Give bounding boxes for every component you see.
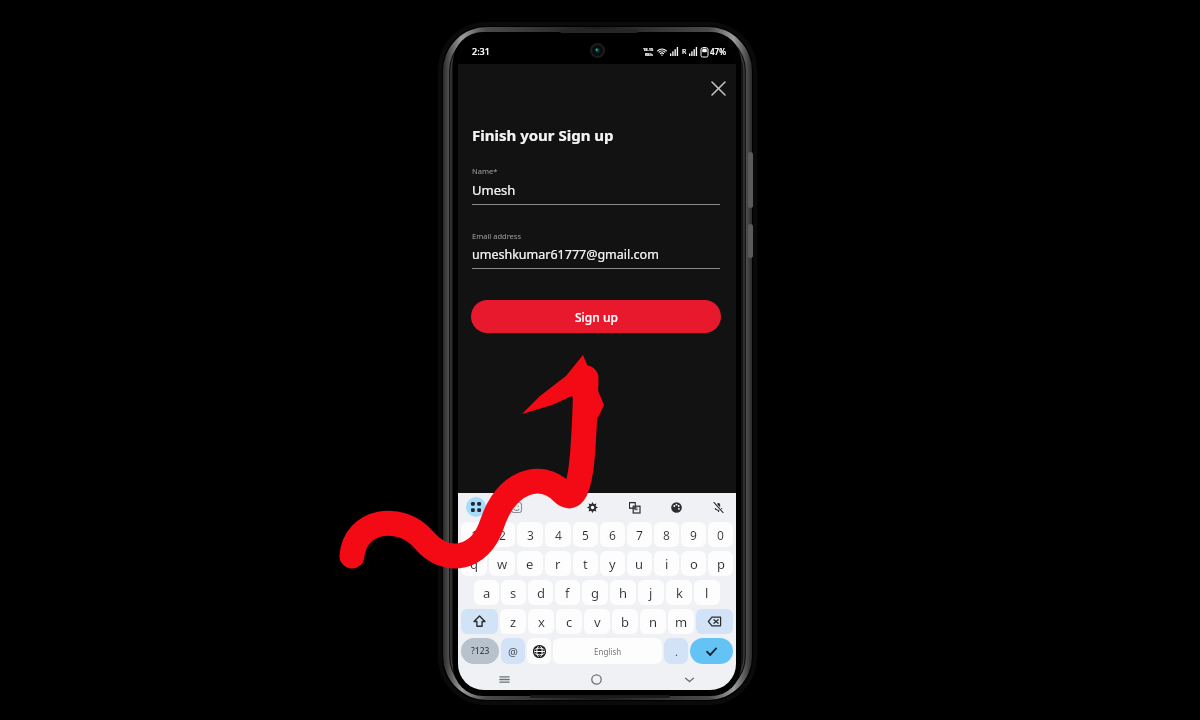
button[interactable]: 7 <box>627 522 652 547</box>
staticText: KB/s <box>645 52 653 57</box>
button[interactable]: z <box>500 609 526 634</box>
staticText: a <box>483 584 491 602</box>
button[interactable]: @ <box>501 638 525 664</box>
staticText: b <box>621 613 629 631</box>
staticText: 2:31 <box>472 45 490 57</box>
button[interactable]: 3 <box>517 522 543 547</box>
button[interactable]: 9 <box>681 522 706 547</box>
button[interactable]: r <box>545 551 571 576</box>
staticText: Sign up <box>575 309 618 325</box>
button[interactable]: c <box>556 609 582 634</box>
button[interactable]: Toolbox <box>466 497 486 517</box>
button[interactable]: g <box>582 580 608 605</box>
button[interactable]: j <box>638 580 664 605</box>
staticText: umeshkumar61777@gmail.com <box>472 246 659 263</box>
button[interactable]: 6 <box>600 522 625 547</box>
button[interactable]: Enter <box>690 638 733 664</box>
staticText: 0 <box>717 527 724 543</box>
staticText: 3 <box>527 527 534 543</box>
button[interactable]: b <box>612 609 638 634</box>
button[interactable]: 0 <box>708 522 733 547</box>
button[interactable]: . <box>664 638 688 664</box>
staticText: f <box>565 584 570 602</box>
button[interactable]: Settings <box>582 497 602 517</box>
staticText: u <box>635 555 644 573</box>
staticText: Finish your Sign up <box>472 125 614 145</box>
staticText: ?123 <box>471 645 490 657</box>
staticText: v <box>594 613 601 631</box>
staticText: 47% <box>710 46 726 57</box>
button[interactable]: Change language <box>527 638 551 664</box>
staticText: h <box>619 584 628 602</box>
staticText: k <box>676 584 683 602</box>
staticText: Umesh <box>472 181 516 199</box>
staticText: r <box>555 555 561 573</box>
button[interactable]: e <box>517 551 543 576</box>
staticText: o <box>690 555 698 573</box>
button[interactable]: a <box>474 580 499 605</box>
button[interactable]: Hide keyboard <box>643 669 736 690</box>
button[interactable]: y <box>600 551 625 576</box>
button[interactable]: Backspace <box>696 609 733 634</box>
staticText: w <box>497 555 508 573</box>
button[interactable]: d <box>528 580 553 605</box>
button[interactable]: n <box>640 609 666 634</box>
staticText: g <box>591 584 599 602</box>
button[interactable]: h <box>610 580 636 605</box>
staticText: d <box>537 584 545 602</box>
button[interactable]: Shift <box>461 609 498 634</box>
staticText: @ <box>508 644 518 659</box>
staticText: English <box>594 646 622 657</box>
staticText: Name* <box>472 166 498 176</box>
button[interactable]: l <box>694 580 720 605</box>
button[interactable]: Voice input off <box>708 497 728 517</box>
button[interactable]: v <box>584 609 610 634</box>
staticText: 1 <box>471 527 478 543</box>
staticText: 7 <box>636 527 643 543</box>
staticText: y <box>609 555 616 573</box>
button[interactable]: x <box>528 609 554 634</box>
button[interactable]: f <box>555 580 580 605</box>
button[interactable]: English <box>553 638 662 664</box>
button[interactable]: s <box>501 580 526 605</box>
staticText: Email address <box>472 231 522 241</box>
staticText: l <box>705 584 709 602</box>
staticText: . <box>675 644 678 659</box>
staticText: p <box>717 555 725 573</box>
button[interactable]: p <box>708 551 733 576</box>
staticText: 9 <box>690 527 697 543</box>
staticText: c <box>566 613 573 631</box>
button[interactable]: 1 <box>461 522 487 547</box>
staticText: 8 <box>663 527 670 543</box>
button[interactable]: Stickers <box>506 497 526 517</box>
button[interactable]: 5 <box>573 522 598 547</box>
button[interactable]: Themes <box>666 497 686 517</box>
staticText: i <box>665 555 669 573</box>
staticText: R <box>682 47 687 57</box>
button[interactable]: Close <box>702 72 734 104</box>
button[interactable]: t <box>573 551 598 576</box>
staticText: 6 <box>609 527 616 543</box>
staticText: 5 <box>582 527 589 543</box>
button[interactable]: w <box>489 551 515 576</box>
button[interactable]: i <box>654 551 679 576</box>
button[interactable]: k <box>666 580 692 605</box>
button[interactable]: u <box>627 551 652 576</box>
button[interactable]: Sign up <box>471 300 721 333</box>
staticText: 18.15 <box>643 47 654 52</box>
staticText: z <box>510 613 517 631</box>
button[interactable]: Recents <box>458 669 550 690</box>
staticText: 2 <box>499 527 506 543</box>
button[interactable]: ?123 <box>461 638 499 664</box>
button[interactable]: 8 <box>654 522 679 547</box>
staticText: s <box>510 584 517 602</box>
button[interactable]: q <box>461 551 487 576</box>
staticText: j <box>649 584 653 602</box>
button[interactable]: o <box>681 551 706 576</box>
button[interactable]: Translate <box>624 497 644 517</box>
button[interactable]: m <box>668 609 694 634</box>
staticText: 4 <box>555 527 562 543</box>
button[interactable]: 2 <box>489 522 515 547</box>
button[interactable]: Home <box>550 669 643 690</box>
button[interactable]: 4 <box>545 522 571 547</box>
